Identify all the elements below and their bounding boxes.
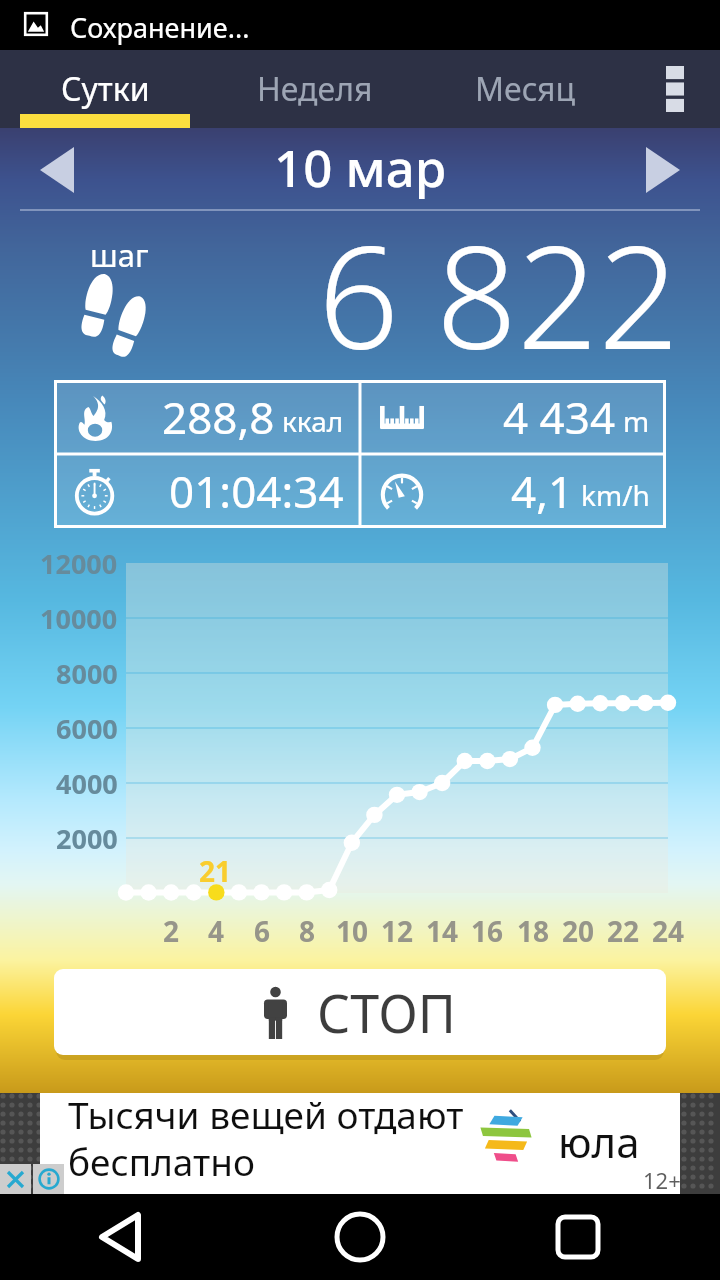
staticText: 10 bbox=[336, 912, 369, 946]
button[interactable]: Back bbox=[60, 1194, 180, 1280]
staticText: Тысячи вещей отдают bbox=[68, 1089, 464, 1139]
staticText: 22 bbox=[607, 912, 640, 946]
button[interactable]: Previous day bbox=[0, 128, 114, 212]
staticText: 16 bbox=[471, 912, 504, 946]
staticText: 288,8 bbox=[162, 387, 275, 447]
staticText: 10 мар bbox=[274, 132, 447, 201]
staticText: 12000 bbox=[40, 545, 118, 582]
staticText: 4 434 bbox=[503, 387, 616, 447]
button[interactable]: Неделя bbox=[210, 50, 420, 128]
button[interactable]: 4,1 bbox=[360, 454, 666, 528]
button[interactable]: Сутки bbox=[0, 50, 210, 128]
staticText: 2 bbox=[163, 912, 180, 946]
staticText: Неделя bbox=[257, 67, 373, 111]
staticText: СТОП bbox=[317, 977, 456, 1048]
staticText: 18 bbox=[517, 912, 550, 946]
button[interactable]: More options bbox=[630, 50, 720, 128]
button[interactable]: Close ad bbox=[0, 1164, 31, 1194]
staticText: Месяц bbox=[475, 67, 576, 111]
staticText: km/h bbox=[581, 476, 650, 514]
button[interactable]: 288,8 bbox=[54, 380, 360, 454]
staticText: 10000 bbox=[40, 600, 118, 637]
staticText: 6 bbox=[254, 912, 271, 946]
staticText: 2000 bbox=[56, 820, 118, 857]
staticText: 14 bbox=[426, 912, 459, 946]
button[interactable] bbox=[40, 1093, 680, 1194]
button[interactable]: 4 434 bbox=[360, 380, 666, 454]
staticText: 4 bbox=[208, 912, 225, 946]
button[interactable]: Месяц bbox=[420, 50, 630, 128]
staticText: 12+ bbox=[643, 1165, 681, 1195]
button[interactable]: Recent apps bbox=[518, 1194, 638, 1280]
staticText: ккал bbox=[282, 402, 344, 440]
staticText: 24 bbox=[652, 912, 685, 946]
staticText: m bbox=[623, 402, 650, 440]
staticText: 8 bbox=[299, 912, 316, 946]
button[interactable]: СТОП bbox=[54, 969, 666, 1055]
staticText: 4,1 bbox=[511, 461, 574, 521]
button[interactable]: Next day bbox=[606, 128, 720, 212]
staticText: 20 bbox=[562, 912, 595, 946]
button[interactable]: 01:04:34 bbox=[54, 454, 360, 528]
staticText: Сохранение... bbox=[70, 9, 250, 46]
staticText: 6 822 bbox=[318, 197, 680, 390]
staticText: 4000 bbox=[56, 765, 118, 802]
staticText: 12 bbox=[381, 912, 414, 946]
staticText: шаг bbox=[90, 234, 149, 276]
staticText: Сутки bbox=[61, 67, 150, 111]
staticText: 6000 bbox=[56, 710, 118, 747]
staticText: 8000 bbox=[56, 655, 118, 692]
staticText: бесплатно bbox=[68, 1136, 255, 1186]
staticText: юла bbox=[558, 1113, 640, 1170]
staticText: 01:04:34 bbox=[169, 461, 344, 521]
button[interactable]: Home bbox=[300, 1194, 420, 1280]
button[interactable]: Ad info bbox=[33, 1164, 64, 1194]
staticText: 21 bbox=[199, 852, 232, 888]
